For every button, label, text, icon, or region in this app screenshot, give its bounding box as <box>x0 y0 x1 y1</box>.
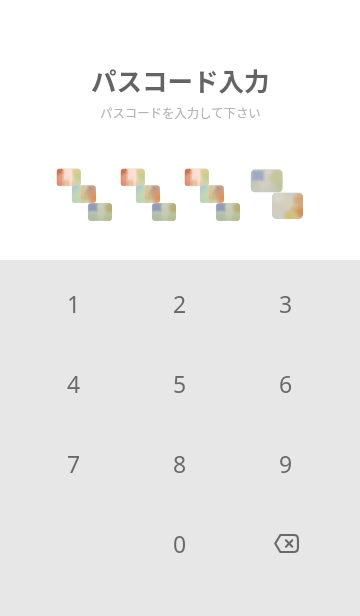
button[interactable]: 削除 <box>233 503 339 583</box>
staticText: 3 <box>279 288 293 319</box>
staticText: パスコード入力 <box>91 61 270 98</box>
button[interactable]: 5 <box>127 343 233 423</box>
staticText: 5 <box>173 368 187 399</box>
staticText: 8 <box>173 448 187 479</box>
staticText: 6 <box>279 368 293 399</box>
staticText: パスコードを入力して下さい <box>100 104 261 122</box>
button[interactable]: 8 <box>127 423 233 503</box>
button[interactable]: 2 <box>127 263 233 343</box>
button[interactable]: 3 <box>233 263 339 343</box>
button[interactable]: 6 <box>233 343 339 423</box>
staticText: 1 <box>67 288 81 319</box>
staticText: 0 <box>173 528 187 559</box>
button[interactable]: 9 <box>233 423 339 503</box>
staticText: 2 <box>173 288 187 319</box>
staticText: 4 <box>67 368 81 399</box>
staticText: 7 <box>67 448 81 479</box>
button[interactable]: 1 <box>21 263 127 343</box>
button[interactable]: 0 <box>127 503 233 583</box>
button[interactable]: 7 <box>21 423 127 503</box>
button[interactable]: 4 <box>21 343 127 423</box>
staticText: 9 <box>279 448 293 479</box>
